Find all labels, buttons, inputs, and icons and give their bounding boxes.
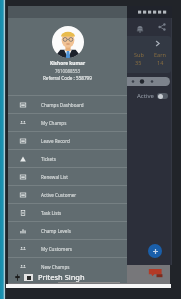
- button[interactable]: Task Lists: [8, 204, 127, 221]
- button[interactable]: Champs Dashboard: [8, 96, 127, 113]
- button[interactable]: Add: [148, 244, 162, 258]
- staticText: My Customers: [41, 246, 73, 252]
- staticText: Renewal List: [41, 174, 68, 180]
- staticText: My Champs: [41, 120, 67, 126]
- staticText: 14: [157, 59, 164, 66]
- staticText: 7610088553: [55, 68, 81, 74]
- staticText: Champ Levels: [41, 228, 71, 234]
- staticText: Referral Code : 558799: [43, 75, 92, 81]
- button[interactable]: New Champs: [8, 258, 127, 275]
- staticText: Task Lists: [41, 210, 62, 216]
- staticText: Kishore kumar: [50, 60, 86, 67]
- staticText: Leave Record: [41, 138, 70, 144]
- button[interactable]: Tickets: [8, 150, 127, 167]
- button[interactable]: Leave Record: [8, 132, 127, 149]
- staticText: Champs Dashboard: [41, 102, 84, 108]
- staticText: Tickets: [41, 156, 56, 162]
- button[interactable]: Notifications: [133, 22, 146, 35]
- staticText: Active: [137, 92, 154, 100]
- button[interactable]: Champ Levels: [8, 222, 127, 239]
- button[interactable]: Renewal List: [8, 168, 127, 185]
- button[interactable]: Active: [137, 91, 168, 100]
- button[interactable]: Open details: [104, 36, 171, 73]
- button[interactable]: [118, 77, 170, 86]
- staticText: New Champs: [41, 264, 70, 270]
- staticText: 35: [135, 59, 142, 66]
- staticText: Earn: [154, 51, 166, 58]
- button[interactable]: My Customers: [8, 240, 127, 257]
- button[interactable]: Expand: [24, 274, 33, 281]
- staticText: Sub: [134, 51, 144, 58]
- button[interactable]: Pin: [14, 274, 21, 281]
- button[interactable]: Active Customer: [8, 186, 127, 203]
- button[interactable]: My Champs: [8, 114, 127, 131]
- staticText: Active Customer: [41, 192, 77, 198]
- staticText: Pritesh Singh: [38, 272, 85, 282]
- button[interactable]: Share: [155, 20, 168, 33]
- other: Open details: [153, 39, 162, 48]
